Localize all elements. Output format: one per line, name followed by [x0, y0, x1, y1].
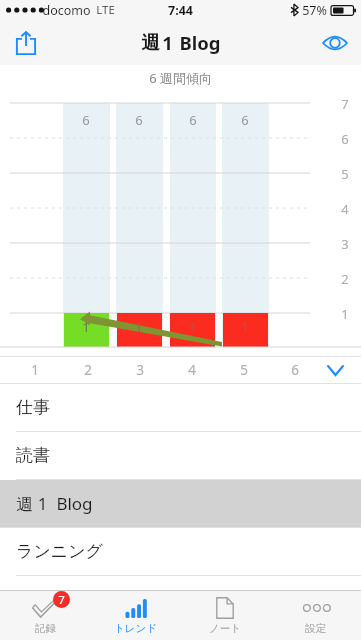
staticText: 6: [149, 69, 157, 87]
staticText: 6: [291, 361, 299, 379]
button[interactable]: Share: [8, 25, 44, 61]
staticText: 週間傾向: [160, 70, 212, 86]
staticText: 6: [135, 111, 143, 127]
staticText: 仕事: [16, 397, 50, 418]
staticText: 週 1 Blog: [16, 492, 93, 515]
button[interactable]: トレンド: [90, 591, 180, 640]
staticText: 1: [241, 318, 249, 334]
button[interactable]: 仕事: [0, 384, 361, 431]
staticText: 3: [136, 361, 144, 379]
staticText: 1: [162, 30, 173, 55]
staticText: 7:44: [168, 2, 193, 19]
staticText: 7: [58, 592, 65, 608]
staticText: ノート: [209, 622, 241, 635]
staticText: Blog: [179, 30, 221, 55]
staticText: 1: [135, 318, 143, 334]
button[interactable]: ノート: [180, 591, 270, 640]
staticText: 4: [188, 361, 196, 379]
button[interactable]: ランニング: [0, 528, 361, 575]
staticText: 1: [341, 305, 349, 321]
button[interactable]: 週 1 Blog: [0, 480, 361, 527]
button[interactable]: Expand: [320, 356, 350, 384]
staticText: 57%: [302, 2, 327, 19]
staticText: 2: [341, 270, 349, 286]
staticText: 6: [241, 111, 249, 127]
staticText: docomo: [42, 2, 91, 19]
staticText: 6: [82, 111, 90, 127]
button[interactable]: 読書: [0, 432, 361, 479]
staticText: 4: [341, 200, 349, 216]
staticText: トレンド: [114, 622, 157, 635]
staticText: 読書: [16, 445, 50, 466]
button[interactable]: 設定: [270, 591, 360, 640]
staticText: LTE: [96, 2, 115, 18]
staticText: 2: [84, 361, 92, 379]
staticText: 1: [189, 318, 197, 334]
staticText: 記録: [35, 622, 56, 635]
staticText: 1: [82, 318, 90, 334]
button[interactable]: Preview: [317, 25, 353, 61]
staticText: 6: [341, 130, 349, 146]
staticText: 5: [240, 361, 248, 379]
staticText: ランニング: [16, 541, 103, 562]
button[interactable]: 7: [0, 591, 90, 640]
staticText: 週: [141, 31, 160, 54]
staticText: 7: [341, 95, 349, 111]
staticText: 5: [341, 165, 349, 181]
staticText: 6: [189, 111, 197, 127]
staticText: 設定: [305, 622, 326, 635]
staticText: 1: [31, 361, 39, 379]
staticText: 3: [341, 235, 349, 251]
